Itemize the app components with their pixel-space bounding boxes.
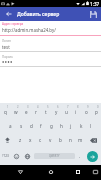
button[interactable]: h bbox=[56, 118, 66, 133]
staticText: h bbox=[60, 123, 63, 129]
button[interactable]: 4 bbox=[31, 103, 41, 118]
staticText: . bbox=[79, 153, 81, 159]
staticText: v bbox=[49, 137, 52, 143]
staticText: i bbox=[75, 109, 77, 115]
staticText: Пароль bbox=[2, 55, 13, 59]
staticText: y bbox=[55, 109, 58, 115]
button[interactable]: 6 bbox=[51, 103, 61, 118]
button[interactable]: ?123 bbox=[0, 147, 11, 165]
staticText: 3 bbox=[27, 105, 29, 109]
button[interactable]: c bbox=[35, 133, 45, 147]
staticText: l bbox=[90, 123, 92, 129]
button[interactable]: Адрес сервера bbox=[0, 21, 101, 36]
button[interactable]: k bbox=[76, 118, 86, 133]
button[interactable]: Emoji bbox=[11, 147, 22, 165]
staticText: o bbox=[85, 109, 88, 115]
staticText: m bbox=[78, 137, 83, 143]
staticText: j bbox=[70, 123, 72, 129]
staticText: q bbox=[4, 109, 7, 115]
button[interactable]: l bbox=[86, 118, 96, 133]
staticText: 8 bbox=[77, 105, 79, 109]
button[interactable]: v bbox=[45, 133, 55, 147]
staticText: k bbox=[80, 123, 83, 129]
button[interactable]: n bbox=[65, 133, 75, 147]
staticText: ?123 bbox=[2, 154, 9, 158]
button[interactable]: 7 bbox=[61, 103, 71, 118]
staticText: a bbox=[9, 123, 12, 129]
button[interactable]: d bbox=[26, 118, 36, 133]
staticText: 0 bbox=[97, 105, 99, 109]
button[interactable]: . bbox=[76, 147, 84, 165]
staticText: test bbox=[2, 44, 10, 50]
button[interactable]: 0 bbox=[91, 103, 101, 118]
staticText: 7 bbox=[67, 105, 69, 109]
staticText: p bbox=[95, 109, 98, 115]
staticText: Адрес сервера bbox=[2, 22, 24, 26]
button[interactable]: 2 bbox=[11, 103, 21, 118]
button[interactable]: g bbox=[46, 118, 56, 133]
staticText: s bbox=[20, 123, 23, 129]
staticText: w bbox=[14, 109, 18, 115]
staticText: Логин bbox=[2, 39, 11, 43]
button[interactable]: 3 bbox=[21, 103, 31, 118]
staticText: g bbox=[50, 123, 53, 129]
staticText: z bbox=[19, 137, 22, 143]
staticText: 2 bbox=[17, 105, 19, 109]
button[interactable]: Пароль bbox=[0, 52, 101, 67]
button[interactable]: Back bbox=[0, 7, 17, 21]
staticText: http://admin.masha24.by/ bbox=[2, 27, 56, 33]
button[interactable]: Enter bbox=[84, 147, 101, 165]
button[interactable]: b bbox=[55, 133, 65, 147]
staticText: 9 bbox=[87, 105, 89, 109]
button[interactable]: Hide keyboard bbox=[89, 165, 101, 178]
button[interactable]: 9 bbox=[81, 103, 91, 118]
staticText: t bbox=[45, 109, 47, 115]
button[interactable]: Логин bbox=[0, 36, 101, 52]
staticText: QWERTY bbox=[49, 154, 60, 158]
button[interactable]: Back bbox=[12, 165, 29, 178]
staticText: 1 bbox=[7, 105, 9, 109]
button[interactable]: a bbox=[5, 118, 16, 133]
button[interactable]: z bbox=[15, 133, 25, 147]
button[interactable]: 8 bbox=[71, 103, 81, 118]
staticText: u bbox=[65, 109, 68, 115]
button[interactable]: Save bbox=[85, 7, 101, 21]
button[interactable]: QWERTY bbox=[34, 153, 75, 159]
button[interactable]: Backspace bbox=[85, 133, 101, 147]
staticText: r bbox=[35, 109, 37, 115]
button[interactable]: Home bbox=[42, 165, 59, 178]
staticText: 1:37 bbox=[90, 1, 100, 7]
button[interactable]: Change keyboard language bbox=[22, 147, 33, 165]
staticText: x bbox=[29, 137, 32, 143]
button[interactable]: 1 bbox=[0, 103, 11, 118]
staticText: 5 bbox=[47, 105, 49, 109]
staticText: c bbox=[39, 137, 42, 143]
button[interactable]: x bbox=[25, 133, 35, 147]
staticText: 6 bbox=[57, 105, 59, 109]
button[interactable]: f bbox=[36, 118, 46, 133]
button[interactable]: s bbox=[16, 118, 26, 133]
staticText: n bbox=[69, 137, 72, 143]
staticText: f bbox=[40, 123, 42, 129]
button[interactable]: m bbox=[75, 133, 85, 147]
button[interactable]: Shift bbox=[0, 133, 15, 147]
staticText: e bbox=[25, 109, 28, 115]
staticText: 4 bbox=[37, 105, 39, 109]
button[interactable]: j bbox=[66, 118, 76, 133]
button[interactable]: 5 bbox=[41, 103, 51, 118]
button[interactable]: Recent apps bbox=[70, 165, 86, 178]
staticText: b bbox=[59, 137, 62, 143]
staticText: d bbox=[30, 123, 33, 129]
staticText: Добавить сервер bbox=[17, 11, 60, 18]
